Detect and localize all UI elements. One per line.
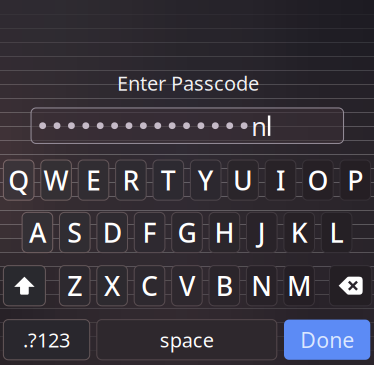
button[interactable]: N [246, 266, 277, 306]
staticText: space [160, 326, 214, 353]
staticText: Enter Passcode [117, 70, 259, 96]
staticText: I [276, 162, 285, 198]
staticText: n [251, 109, 267, 143]
staticText: U [233, 162, 253, 198]
button[interactable]: A [22, 212, 53, 253]
button[interactable]: X [97, 266, 127, 306]
button[interactable]: Q [3, 160, 34, 200]
staticText: E [86, 162, 101, 198]
staticText: M [287, 268, 311, 303]
staticText: C [141, 268, 158, 303]
button[interactable]: T [153, 160, 184, 200]
staticText: V [179, 268, 195, 303]
button[interactable]: Y [190, 160, 221, 200]
button[interactable]: Shift [3, 266, 45, 306]
button[interactable]: Done [284, 320, 370, 360]
staticText: J [258, 215, 266, 250]
button[interactable]: W [41, 160, 71, 200]
staticText: G [177, 215, 196, 250]
button[interactable]: D [97, 212, 127, 253]
staticText: X [104, 268, 120, 303]
button[interactable]: H [209, 212, 240, 253]
button[interactable]: K [284, 212, 314, 253]
staticText: D [103, 215, 122, 250]
button[interactable]: Delete [329, 266, 372, 306]
button[interactable]: V [172, 266, 202, 306]
staticText: Z [67, 268, 82, 303]
button[interactable]: C [134, 266, 165, 306]
staticText: Q [8, 162, 29, 198]
staticText: T [161, 162, 176, 198]
staticText: H [214, 215, 234, 250]
button[interactable]: P [340, 160, 371, 200]
staticText: K [291, 215, 308, 250]
staticText: N [251, 268, 272, 303]
button[interactable]: R [116, 160, 146, 200]
button[interactable]: F [134, 212, 165, 253]
staticText: Done [300, 325, 354, 354]
button[interactable]: J [246, 212, 277, 253]
staticText: Y [198, 162, 214, 198]
staticText: .?123 [23, 326, 70, 353]
button[interactable]: space [97, 320, 277, 360]
button[interactable]: L [321, 212, 352, 253]
staticText: W [44, 162, 69, 198]
button[interactable]: E [78, 160, 109, 200]
staticText: O [307, 162, 328, 198]
button[interactable]: Z [59, 266, 90, 306]
button[interactable]: M [284, 266, 314, 306]
staticText: P [347, 162, 363, 198]
staticText: S [67, 215, 82, 250]
button[interactable]: O [303, 160, 333, 200]
button[interactable]: Numbers and symbols [3, 320, 90, 360]
button[interactable]: I [265, 160, 296, 200]
button[interactable]: S [59, 212, 90, 253]
staticText: R [122, 162, 139, 198]
staticText: L [330, 215, 344, 250]
staticText: F [143, 215, 157, 250]
button[interactable]: G [172, 212, 202, 253]
button[interactable]: B [209, 266, 240, 306]
staticText: B [216, 268, 233, 303]
button[interactable]: U [228, 160, 258, 200]
staticText: A [29, 215, 46, 250]
